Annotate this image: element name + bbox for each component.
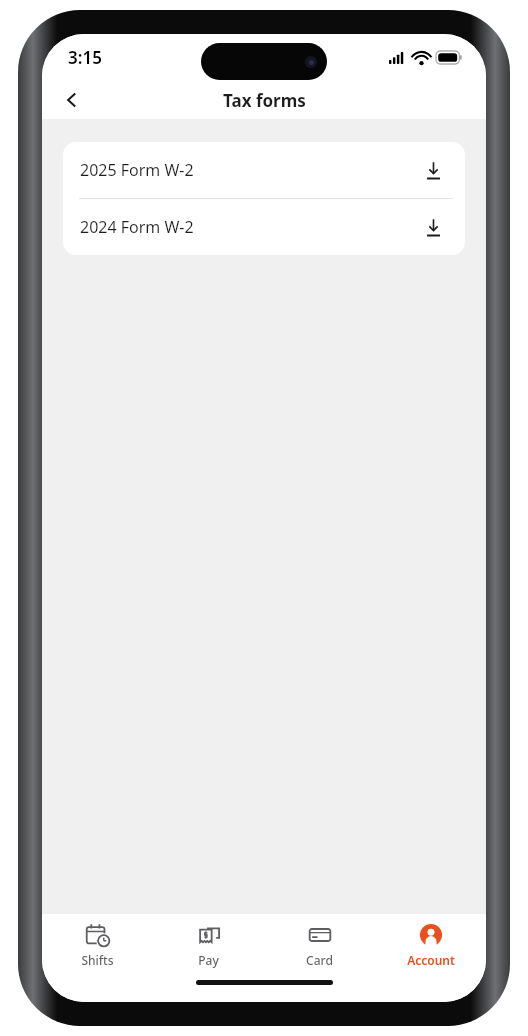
button[interactable]: 2024 Form W-2 <box>63 199 465 255</box>
button[interactable]: Download 2025 Form W-2 <box>419 156 447 184</box>
staticText: Pay <box>198 952 219 968</box>
button[interactable]: Account <box>375 914 486 976</box>
button[interactable]: Back <box>52 81 92 119</box>
staticText: Account <box>407 952 455 968</box>
staticText: Card <box>306 952 333 968</box>
button[interactable]: Card <box>264 914 375 976</box>
staticText: 3:15 <box>68 46 102 69</box>
button[interactable]: Pay <box>153 914 264 976</box>
button[interactable]: Shifts <box>42 914 153 976</box>
staticText: 2025 Form W-2 <box>80 159 419 181</box>
staticText: Tax forms <box>223 89 306 112</box>
button[interactable]: 2025 Form W-2 <box>63 142 465 198</box>
staticText: Shifts <box>81 952 114 968</box>
staticText: 2024 Form W-2 <box>80 216 419 238</box>
button[interactable]: Download 2024 Form W-2 <box>419 213 447 241</box>
